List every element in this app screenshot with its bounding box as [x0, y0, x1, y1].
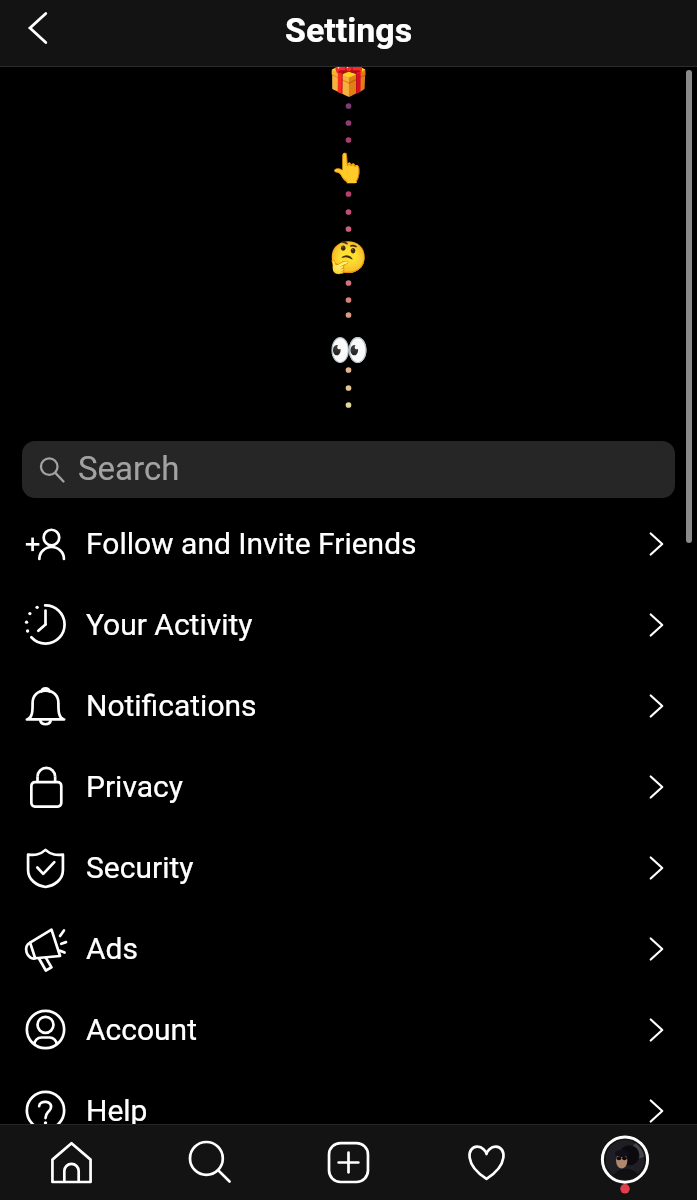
- button[interactable]: Security: [0, 827, 697, 908]
- button[interactable]: Profile: [558, 1125, 697, 1200]
- staticText: 👀: [329, 331, 369, 369]
- button[interactable]: Account: [0, 989, 697, 1070]
- button[interactable]: Your Activity: [0, 584, 697, 665]
- button[interactable]: Notifications: [0, 665, 697, 746]
- staticText: 🤔: [329, 239, 368, 275]
- staticText: 👆: [330, 151, 367, 185]
- staticText: Ads: [86, 931, 138, 966]
- staticText: Notifications: [86, 688, 257, 723]
- button[interactable]: Create: [280, 1125, 419, 1200]
- staticText: Account: [86, 1012, 198, 1047]
- staticText: Security: [86, 850, 194, 885]
- staticText: Follow and Invite Friends: [86, 526, 417, 561]
- staticText: Your Activity: [86, 607, 253, 642]
- button[interactable]: Ads: [0, 908, 697, 989]
- button[interactable]: Privacy: [0, 746, 697, 827]
- button[interactable]: Help: [0, 1070, 697, 1124]
- button[interactable]: Activity: [419, 1125, 558, 1200]
- button[interactable]: Follow and Invite Friends: [0, 503, 697, 584]
- staticText: 🎁: [328, 67, 370, 98]
- button[interactable]: Search: [140, 1125, 280, 1200]
- button[interactable]: Home: [0, 1125, 140, 1200]
- staticText: Privacy: [86, 769, 183, 804]
- staticText: Help: [86, 1093, 148, 1124]
- button[interactable]: Back: [10, 7, 64, 61]
- staticText: Settings: [285, 10, 413, 50]
- staticText: Search: [78, 449, 180, 488]
- button[interactable]: Search: [22, 441, 675, 498]
